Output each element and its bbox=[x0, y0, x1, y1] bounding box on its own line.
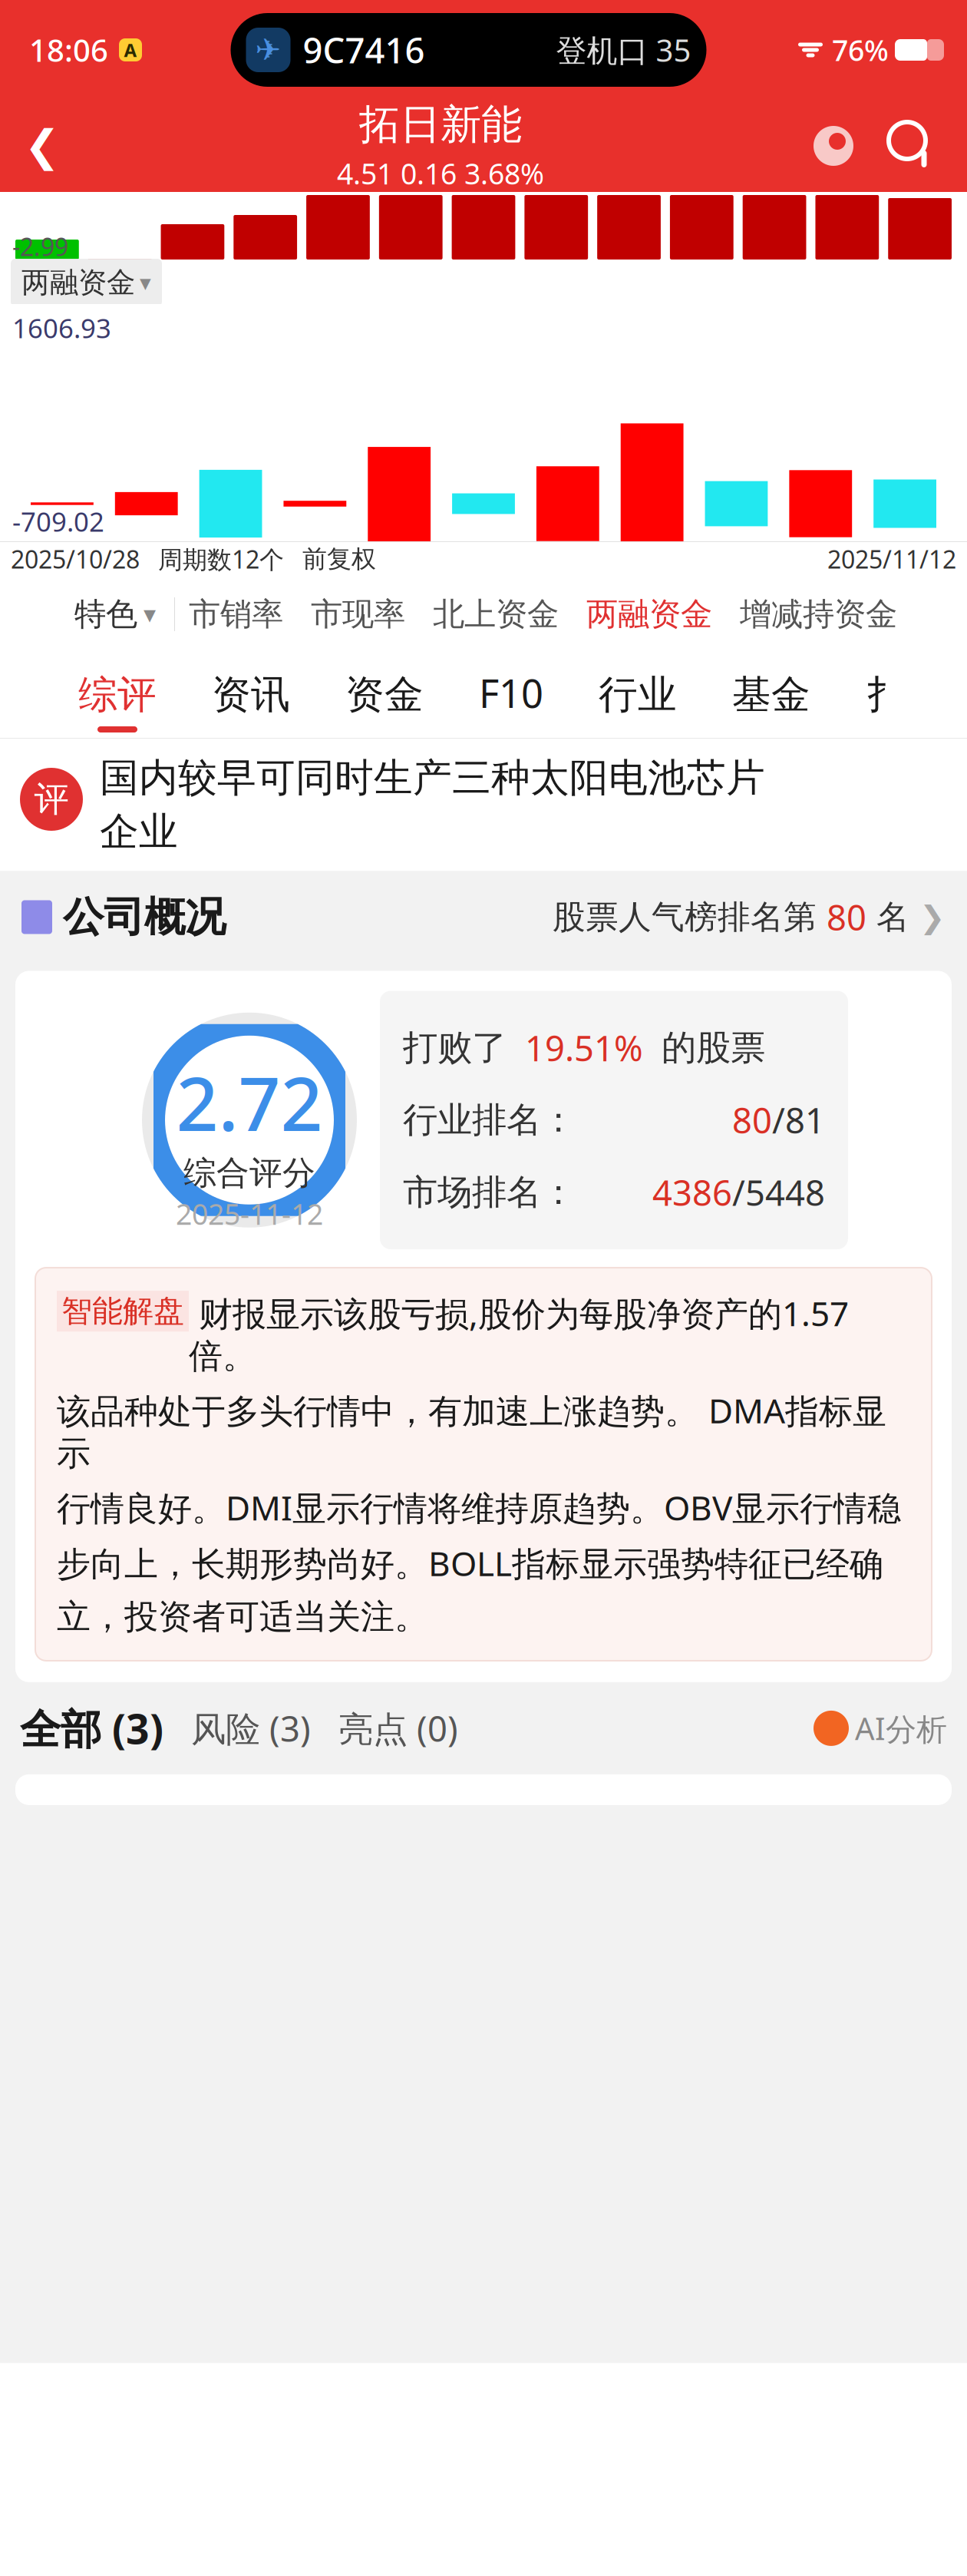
staticText: 综评 bbox=[78, 671, 157, 719]
staticText: -709.02 bbox=[12, 504, 104, 539]
button[interactable]: 返回 bbox=[0, 100, 84, 192]
staticText: 打败了 bbox=[403, 1026, 507, 1069]
staticText: 资讯 bbox=[212, 671, 290, 719]
button[interactable]: 两融资金 bbox=[573, 576, 726, 653]
staticText: 特色 bbox=[74, 595, 137, 634]
staticText: 智能解盘 bbox=[61, 1292, 184, 1330]
staticText: 股票人气榜排名第 bbox=[553, 897, 827, 937]
button[interactable]: 两融资金 bbox=[11, 259, 162, 306]
button[interactable]: 市现率 bbox=[297, 576, 419, 653]
staticText: -2.99 bbox=[12, 230, 68, 263]
staticText: 19.51% bbox=[507, 1025, 662, 1071]
button[interactable]: 股票人气榜排名第 bbox=[553, 894, 946, 940]
staticText: 前复权 bbox=[302, 544, 376, 574]
staticText: A bbox=[124, 38, 137, 62]
button[interactable]: 北上资金 bbox=[419, 576, 573, 653]
staticText: ❯ bbox=[909, 900, 946, 935]
button[interactable]: 增减持资金 bbox=[726, 576, 911, 653]
staticText: 两融资金 bbox=[21, 265, 135, 300]
staticText: 2025-11-12 bbox=[176, 1195, 323, 1233]
staticText: 登机口 35 bbox=[556, 29, 691, 70]
staticText: 4386 bbox=[652, 1169, 732, 1216]
staticText: 76% bbox=[832, 31, 889, 69]
staticText: 80 bbox=[732, 1097, 772, 1143]
staticText: 资金 bbox=[345, 671, 424, 719]
staticText: 企业 bbox=[100, 808, 178, 856]
staticText: 基金 bbox=[732, 671, 810, 719]
button[interactable]: 综评 bbox=[51, 653, 184, 739]
staticText: F10 bbox=[479, 667, 543, 719]
staticText: 名 bbox=[866, 897, 909, 937]
staticText: 步向上，长期形势尚好。BOLL指标显示强势特征已经确 bbox=[57, 1541, 883, 1585]
staticText: 9C7416 bbox=[303, 27, 425, 73]
staticText: 亮点 (0) bbox=[338, 1705, 458, 1751]
button[interactable]: 资金 bbox=[318, 653, 451, 739]
button[interactable]: 亮点 (0) bbox=[311, 1705, 458, 1751]
staticText: 立，投资者可适当关注。 bbox=[57, 1596, 428, 1638]
button[interactable]: 全部 (3) bbox=[20, 1701, 163, 1755]
staticText: 北上资金 bbox=[433, 595, 559, 634]
staticText: ▾ bbox=[140, 270, 151, 295]
staticText: 行业排名： bbox=[403, 1099, 576, 1141]
button[interactable]: F10 bbox=[451, 653, 571, 739]
button[interactable]: 风险 (3) bbox=[163, 1705, 311, 1751]
button[interactable]: AI分析 bbox=[814, 1708, 947, 1749]
staticText: 扌 bbox=[866, 671, 905, 719]
button[interactable]: 资讯 bbox=[184, 653, 318, 739]
button[interactable]: 特色 bbox=[56, 576, 174, 653]
staticText: ✈ bbox=[255, 32, 281, 67]
staticText: 风险 (3) bbox=[191, 1705, 311, 1751]
staticText: ❮ bbox=[24, 121, 60, 170]
button[interactable]: 基金 bbox=[705, 653, 838, 739]
staticText: 财报显示该股亏损,股价为每股净资产的1.57倍。 bbox=[189, 1291, 849, 1377]
staticText: 市销率 bbox=[189, 595, 283, 634]
button[interactable]: 扌 bbox=[838, 653, 933, 739]
staticText: 2025/10/28 bbox=[11, 543, 140, 575]
button[interactable]: 行业 bbox=[571, 653, 705, 739]
staticText: 拓日新能 bbox=[359, 99, 522, 150]
staticText: ▾ bbox=[144, 600, 156, 628]
staticText: 两融资金 bbox=[586, 595, 712, 634]
staticText: /81 bbox=[772, 1097, 825, 1143]
staticText: 行情良好。DMI显示行情将维持原趋势。OBV显示行情稳 bbox=[57, 1485, 901, 1530]
staticText: 该品种处于多头行情中，有加速上涨趋势。 DMA指标显示 bbox=[57, 1388, 886, 1474]
staticText: 公司概况 bbox=[63, 892, 226, 942]
staticText: AI分析 bbox=[855, 1708, 947, 1749]
staticText: 2.72 bbox=[176, 1053, 323, 1151]
staticText: /5448 bbox=[732, 1169, 825, 1216]
staticText: 国内较早可同时生产三种太阳电池芯片 bbox=[100, 754, 765, 802]
staticText: 周期数12个 bbox=[158, 543, 284, 575]
staticText: 增减持资金 bbox=[740, 595, 897, 634]
staticText: 4.51 0.16 3.68% bbox=[337, 154, 544, 192]
staticText: 市现率 bbox=[311, 595, 405, 634]
staticText: 综合评分 bbox=[183, 1153, 315, 1193]
button[interactable]: 搜索 bbox=[870, 100, 955, 192]
staticText: 1606.93 bbox=[12, 310, 111, 346]
staticText: 评 bbox=[34, 778, 69, 821]
button[interactable]: 市销率 bbox=[175, 576, 297, 653]
staticText: 行业 bbox=[599, 671, 677, 719]
staticText: 80 bbox=[827, 894, 866, 940]
staticText: 2025/11/12 bbox=[827, 543, 956, 575]
staticText: 全部 (3) bbox=[20, 1701, 163, 1755]
staticText: 市场排名： bbox=[403, 1171, 576, 1214]
staticText: 18:06 bbox=[29, 29, 108, 70]
button[interactable]: 智能助手 bbox=[797, 100, 870, 192]
staticText: 的股票 bbox=[662, 1026, 765, 1069]
